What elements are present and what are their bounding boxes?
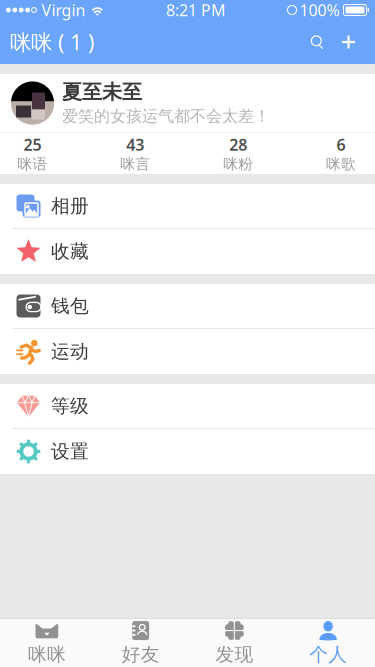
staticText: 25 xyxy=(23,134,41,155)
staticText: Virgin xyxy=(41,0,85,21)
staticText: 6 xyxy=(336,134,345,155)
staticText: 爱笑的女孩运气都不会太差！ xyxy=(62,106,270,126)
staticText: 等级 xyxy=(51,394,89,417)
button[interactable]: 收藏 xyxy=(0,229,375,274)
button[interactable]: 相册 xyxy=(0,184,375,229)
staticText: 咪语 xyxy=(17,155,47,173)
staticText: 咪咪 ( 1 ) xyxy=(10,28,94,56)
staticText: 运动 xyxy=(51,340,89,363)
staticText: 100% xyxy=(299,0,339,21)
button[interactable]: 个人 xyxy=(281,619,375,667)
staticText: 发现 xyxy=(215,643,253,666)
button[interactable]: 好友 xyxy=(94,619,188,667)
staticText: 咪歌 xyxy=(326,155,356,173)
staticText: 钱包 xyxy=(51,294,89,317)
staticText: 夏至未至 xyxy=(62,80,142,104)
button[interactable]: 夏至未至 xyxy=(0,74,375,132)
staticText: 43 xyxy=(126,134,144,155)
button[interactable]: 等级 xyxy=(0,384,375,429)
staticText: 个人 xyxy=(309,643,347,666)
button[interactable]: Search xyxy=(302,20,333,64)
button[interactable]: Add xyxy=(333,20,364,64)
button[interactable]: 钱包 xyxy=(0,284,375,329)
staticText: 8:21 PM xyxy=(166,0,226,21)
staticText: 咪粉 xyxy=(223,155,253,173)
staticText: 收藏 xyxy=(51,240,89,263)
staticText: 咪言 xyxy=(120,155,150,173)
button[interactable]: 设置 xyxy=(0,429,375,474)
staticText: 好友 xyxy=(122,643,160,666)
staticText: 相册 xyxy=(51,194,89,217)
staticText: 28 xyxy=(229,134,247,155)
button[interactable]: 发现 xyxy=(187,619,281,667)
button[interactable]: 咪咪 xyxy=(0,619,94,667)
staticText: 咪咪 xyxy=(28,643,66,666)
button[interactable]: 运动 xyxy=(0,329,375,374)
staticText: 设置 xyxy=(51,440,89,463)
